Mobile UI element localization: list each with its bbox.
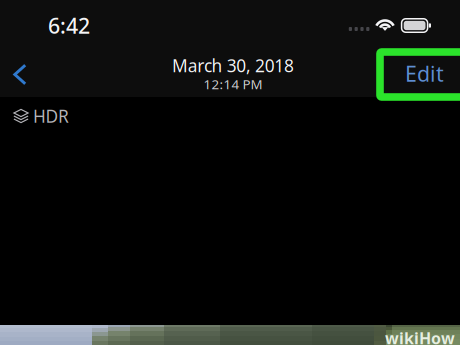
button[interactable]: Edit	[393, 48, 456, 99]
staticText: March 30, 2018	[172, 54, 294, 77]
staticText: HDR	[33, 104, 69, 127]
button[interactable]: Back	[0, 49, 47, 100]
staticText: wikiHow	[385, 327, 455, 345]
staticText: Edit	[405, 59, 444, 88]
staticText: 6:42	[48, 11, 90, 40]
staticText: 12:14 PM	[203, 75, 262, 93]
